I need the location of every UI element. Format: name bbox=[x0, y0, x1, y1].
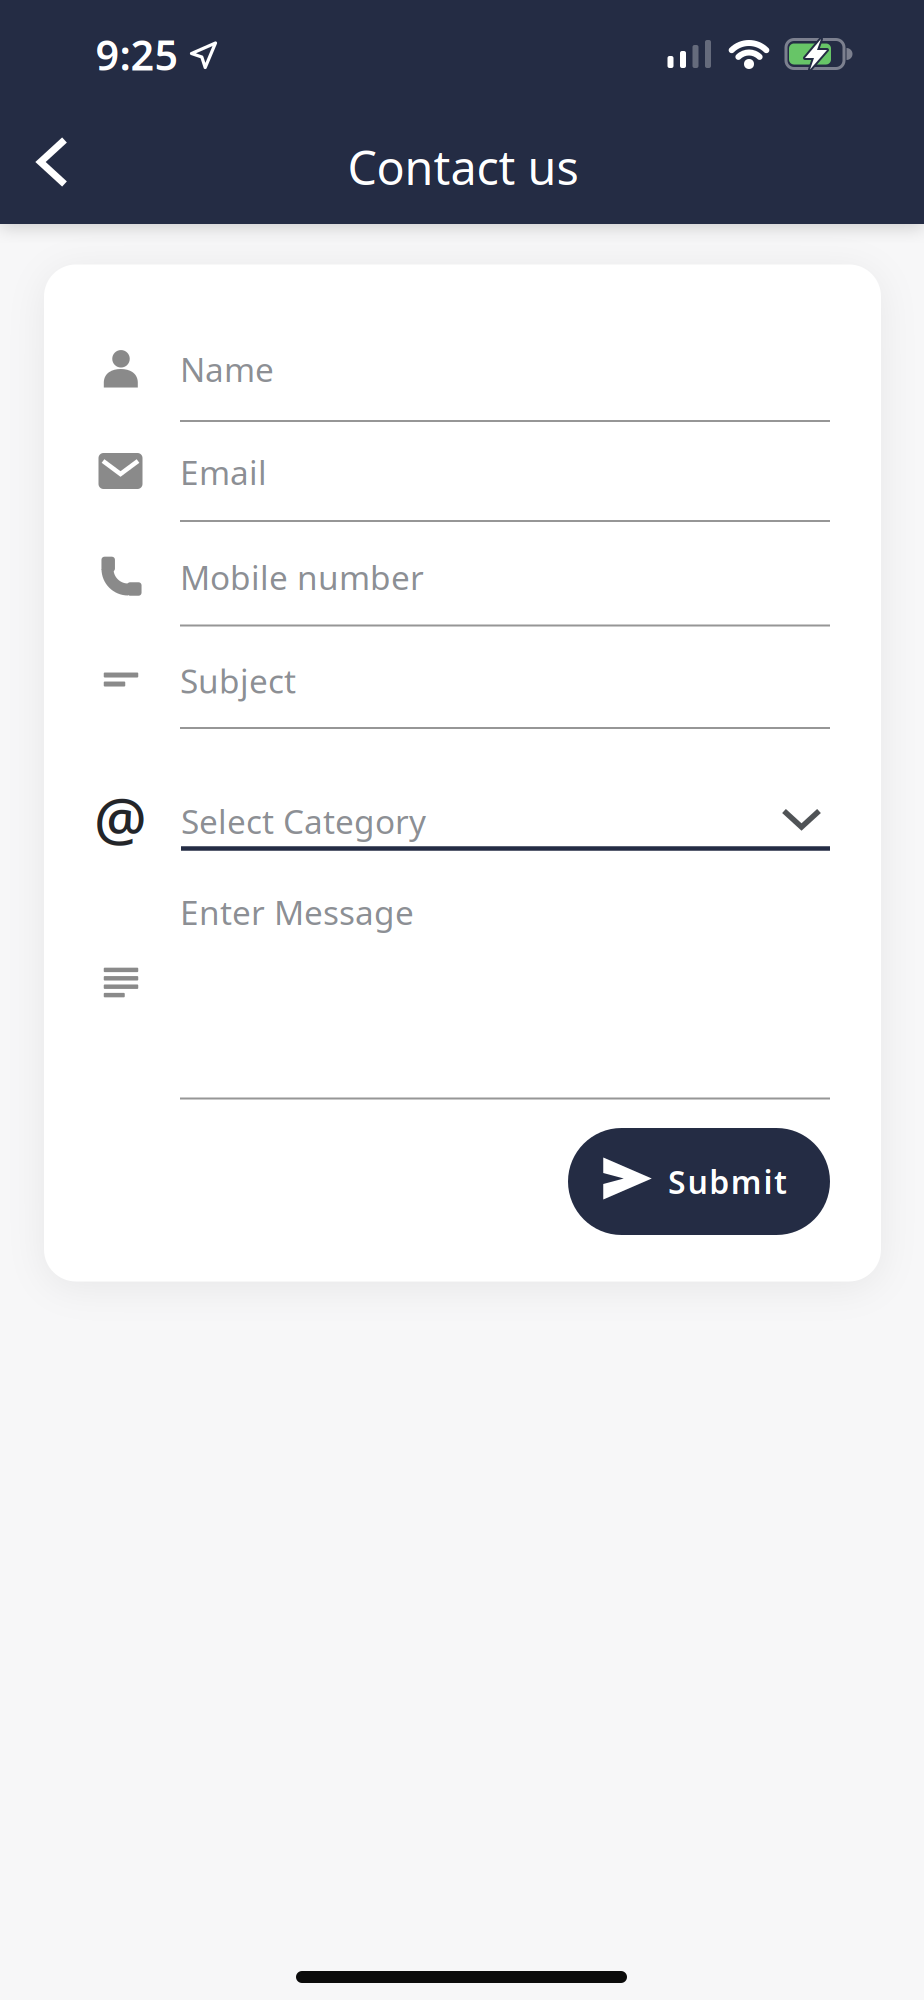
button[interactable]: Email bbox=[180, 446, 830, 522]
staticText: Select Category bbox=[181, 799, 426, 843]
button[interactable]: Submit bbox=[568, 1128, 830, 1235]
staticText: Subject bbox=[180, 658, 296, 703]
button[interactable]: Enter Message bbox=[180, 886, 830, 1099]
staticText: Submit bbox=[668, 1160, 787, 1203]
staticText: Contact us bbox=[347, 136, 578, 198]
staticText: Mobile number bbox=[180, 555, 424, 599]
staticText: Email bbox=[180, 450, 267, 494]
button[interactable]: Select Category bbox=[181, 773, 830, 859]
staticText: Enter Message bbox=[180, 890, 414, 934]
button[interactable]: Name bbox=[180, 343, 830, 422]
button[interactable]: Mobile number bbox=[180, 551, 830, 626]
staticText: @ bbox=[94, 779, 147, 857]
button[interactable]: Subject bbox=[180, 654, 830, 729]
staticText: 9:25 bbox=[95, 27, 178, 82]
staticText: Name bbox=[180, 347, 274, 391]
button[interactable]: Back bbox=[17, 127, 87, 197]
